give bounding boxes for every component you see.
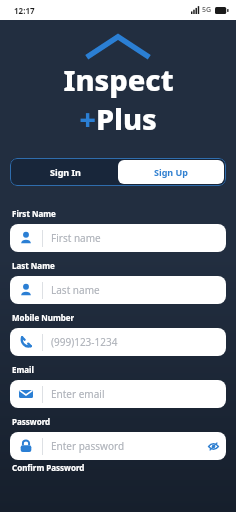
staticText: Enter email bbox=[51, 387, 226, 401]
staticText: (999)123-1234 bbox=[51, 335, 226, 349]
button[interactable]: Sign In bbox=[12, 160, 118, 184]
staticText: Last Name bbox=[12, 260, 55, 271]
staticText: 12:17 bbox=[14, 5, 35, 16]
staticText: Confirm Password bbox=[12, 462, 85, 473]
button[interactable]: Sign Up bbox=[118, 160, 224, 184]
staticText: First Name bbox=[12, 208, 56, 219]
button[interactable]: Enter email bbox=[10, 380, 226, 408]
staticText: Sign Up bbox=[154, 166, 189, 178]
button[interactable]: Enter password bbox=[10, 432, 226, 460]
staticText: Inspect bbox=[63, 60, 174, 99]
button[interactable]: Show password bbox=[200, 432, 226, 460]
staticText: 5G bbox=[202, 5, 212, 15]
button[interactable]: (999)123-1234 bbox=[10, 328, 226, 356]
staticText: +Plus bbox=[79, 99, 157, 138]
staticText: Sign In bbox=[50, 166, 81, 178]
button[interactable]: Last name bbox=[10, 276, 226, 304]
staticText: Enter password bbox=[51, 439, 200, 453]
staticText: First name bbox=[51, 231, 226, 245]
staticText: Email bbox=[12, 364, 34, 375]
button[interactable]: First name bbox=[10, 224, 226, 252]
staticText: Password bbox=[12, 416, 51, 427]
staticText: Last name bbox=[51, 283, 226, 297]
staticText: Mobile Number bbox=[12, 312, 75, 323]
